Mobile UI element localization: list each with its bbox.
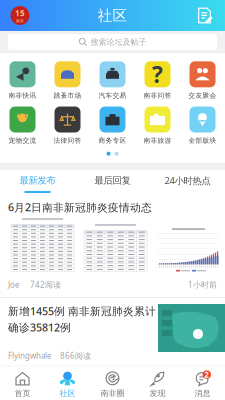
staticText: 交友聚会 bbox=[188, 91, 216, 99]
staticText: 新增1455例 南非新冠肺炎累计 bbox=[8, 304, 156, 318]
staticText: 南非旅游 bbox=[143, 136, 171, 145]
staticText: 首页 bbox=[14, 388, 30, 398]
button[interactable]: 2 bbox=[180, 370, 225, 398]
button[interactable]: 全部版块 bbox=[180, 106, 225, 145]
button[interactable]: 南非快讯 bbox=[0, 61, 45, 99]
staticText: 商务专区 bbox=[98, 136, 126, 145]
staticText: 最新发布 bbox=[19, 175, 55, 186]
staticText: 6月2日南非新冠肺炎疫情动态 bbox=[8, 200, 152, 214]
button[interactable]: 社区 bbox=[45, 370, 90, 398]
staticText: 南非圈 bbox=[100, 388, 124, 398]
staticText: 发现 bbox=[149, 388, 165, 398]
staticText: 866阅读 bbox=[52, 350, 91, 361]
staticText: 社区 bbox=[59, 388, 75, 398]
button[interactable]: 搜索论坛及帖子 bbox=[8, 34, 217, 50]
staticText: 搜索论坛及帖子 bbox=[90, 37, 146, 47]
staticText: 2 bbox=[204, 369, 209, 380]
button[interactable]: 南非旅游 bbox=[135, 106, 180, 145]
staticText: ? bbox=[152, 59, 163, 89]
button[interactable]: ? bbox=[135, 61, 180, 99]
button[interactable]: 汽车交易 bbox=[90, 61, 135, 99]
button[interactable]: 南非圈 bbox=[90, 370, 135, 398]
button[interactable]: 发现 bbox=[135, 370, 180, 398]
button[interactable]: 新增1455例 南非新冠肺炎累计 bbox=[0, 298, 225, 368]
staticText: Joe bbox=[8, 279, 20, 290]
staticText: 跳蚤市场 bbox=[53, 91, 81, 99]
button[interactable]: 最后回复 bbox=[75, 170, 150, 194]
staticText: 742阅读 bbox=[20, 279, 61, 290]
staticText: 南非快讯 bbox=[8, 91, 36, 99]
staticText: 24小时热点 bbox=[164, 174, 210, 187]
button[interactable]: Profile bbox=[7, 2, 33, 28]
button[interactable]: 商务专区 bbox=[90, 106, 135, 145]
staticText: 汽车交易 bbox=[98, 91, 126, 99]
button[interactable]: 跳蚤市场 bbox=[45, 61, 90, 99]
button[interactable]: 6月2日南非新冠肺炎疫情动态 bbox=[0, 193, 225, 298]
button[interactable]: Compose bbox=[192, 2, 218, 28]
staticText: 社区 bbox=[97, 6, 127, 24]
staticText: 法律问答 bbox=[53, 136, 81, 145]
button[interactable]: 24小时热点 bbox=[150, 170, 225, 194]
staticText: 全部版块 bbox=[188, 136, 216, 145]
staticText: 南非问答 bbox=[143, 91, 171, 99]
staticText: 宠物交流 bbox=[8, 136, 36, 145]
button[interactable]: 最新发布 bbox=[0, 170, 75, 194]
staticText: 最后回复 bbox=[94, 175, 130, 186]
staticText: 1小时前 bbox=[188, 279, 217, 290]
staticText: 消息 bbox=[194, 388, 210, 398]
button[interactable]: 首页 bbox=[0, 370, 45, 398]
staticText: 南非 bbox=[16, 18, 24, 23]
button[interactable]: 交友聚会 bbox=[180, 61, 225, 99]
staticText: 15 bbox=[15, 8, 25, 18]
button[interactable]: 法律问答 bbox=[45, 106, 90, 145]
staticText: Flyingwhale bbox=[8, 350, 52, 361]
staticText: 确诊35812例 bbox=[8, 320, 71, 334]
button[interactable]: 宠物交流 bbox=[0, 106, 45, 145]
